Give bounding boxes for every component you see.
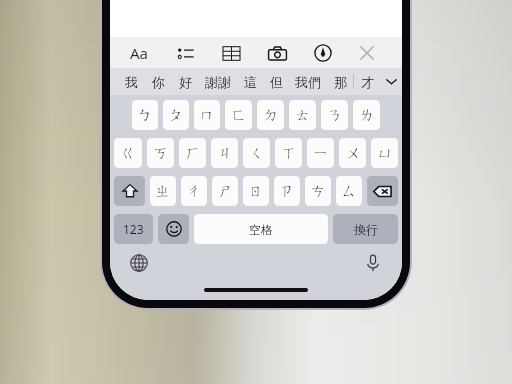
button[interactable]: ㄎ: [147, 138, 174, 168]
staticText: ㄐ: [217, 144, 233, 163]
staticText: ㄈ: [231, 106, 247, 125]
button[interactable]: 換行: [333, 214, 398, 244]
button[interactable]: ㄌ: [353, 100, 380, 130]
button[interactable]: Close: [354, 40, 380, 66]
staticText: ㄅ: [137, 106, 153, 125]
staticText: ㄩ: [377, 144, 393, 163]
staticText: ㄔ: [186, 182, 202, 201]
button[interactable]: Table: [218, 40, 244, 66]
staticText: ㄏ: [185, 144, 201, 163]
button[interactable]: 這: [237, 68, 263, 95]
button[interactable]: 但: [263, 68, 289, 95]
staticText: ㄑ: [249, 144, 265, 163]
button[interactable]: 空格: [194, 214, 328, 244]
staticText: 我: [125, 74, 138, 90]
button[interactable]: ㄅ: [132, 100, 158, 130]
staticText: ㄕ: [217, 182, 233, 201]
staticText: ㄖ: [248, 182, 264, 201]
staticText: 這: [244, 74, 257, 90]
button[interactable]: 才: [354, 68, 380, 95]
button[interactable]: Shift: [114, 176, 145, 206]
staticText: 但: [270, 74, 283, 90]
staticText: ㄧ: [313, 144, 329, 163]
staticText: ㄇ: [199, 106, 215, 125]
button[interactable]: Switch keyboard: [126, 250, 152, 276]
button[interactable]: ㄒ: [275, 138, 302, 168]
staticText: ㄋ: [327, 106, 343, 125]
button[interactable]: ㄐ: [211, 138, 238, 168]
staticText: 換行: [354, 222, 378, 237]
staticText: ㄗ: [279, 182, 295, 201]
button[interactable]: ㄧ: [307, 138, 334, 168]
staticText: ㄆ: [168, 106, 184, 125]
button[interactable]: 123: [114, 214, 153, 244]
button[interactable]: ㄑ: [243, 138, 270, 168]
button[interactable]: 你: [145, 68, 172, 95]
button[interactable]: ㄨ: [339, 138, 366, 168]
button[interactable]: ㄕ: [212, 176, 238, 206]
button[interactable]: ㄖ: [243, 176, 269, 206]
button[interactable]: ㄗ: [274, 176, 300, 206]
button[interactable]: 我們: [289, 68, 327, 95]
staticText: 你: [152, 74, 165, 90]
button[interactable]: Emoji: [158, 214, 189, 244]
button[interactable]: ㄏ: [179, 138, 206, 168]
button[interactable]: List: [172, 40, 198, 66]
button[interactable]: ㄉ: [257, 100, 284, 130]
button[interactable]: ㄍ: [114, 138, 142, 168]
staticText: 123: [123, 221, 144, 237]
staticText: 謝謝: [205, 74, 231, 90]
staticText: ㄊ: [295, 106, 311, 125]
staticText: ㄒ: [281, 144, 297, 163]
staticText: ㄨ: [345, 144, 361, 163]
button[interactable]: Expand suggestions: [380, 68, 402, 95]
button[interactable]: ㄊ: [289, 100, 316, 130]
button[interactable]: Markup: [310, 40, 336, 66]
staticText: 我們: [295, 74, 321, 90]
button[interactable]: ㄩ: [371, 138, 398, 168]
staticText: Aa: [130, 43, 149, 63]
staticText: ㄎ: [153, 144, 169, 163]
staticText: ㄘ: [310, 182, 326, 201]
button[interactable]: 好: [172, 68, 199, 95]
button[interactable]: Dictation: [360, 250, 386, 276]
button[interactable]: 謝謝: [199, 68, 237, 95]
button[interactable]: ㄋ: [321, 100, 348, 130]
button[interactable]: 那: [327, 68, 353, 95]
button[interactable]: ㄘ: [305, 176, 331, 206]
button[interactable]: ㄈ: [225, 100, 252, 130]
button[interactable]: Camera: [264, 40, 290, 66]
button[interactable]: ㄔ: [181, 176, 207, 206]
button[interactable]: Backspace: [367, 176, 398, 206]
staticText: ㄓ: [155, 182, 171, 201]
button[interactable]: Format text: [126, 40, 152, 66]
staticText: 才: [361, 74, 374, 90]
staticText: ㄙ: [341, 182, 357, 201]
button[interactable]: 我: [118, 68, 145, 95]
button[interactable]: ㄓ: [150, 176, 176, 206]
staticText: ㄉ: [263, 106, 279, 125]
staticText: ㄌ: [359, 106, 375, 125]
button[interactable]: ㄇ: [194, 100, 220, 130]
staticText: 那: [334, 74, 347, 90]
button[interactable]: ㄙ: [336, 176, 362, 206]
staticText: ㄍ: [120, 144, 136, 163]
staticText: 好: [179, 74, 192, 90]
staticText: 空格: [249, 222, 273, 237]
button[interactable]: ㄆ: [163, 100, 189, 130]
